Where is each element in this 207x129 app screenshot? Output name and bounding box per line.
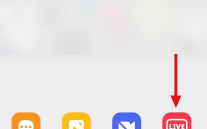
button[interactable]: Photos	[62, 112, 91, 129]
button[interactable]: Video	[112, 112, 141, 129]
button[interactable]: Messages	[11, 112, 40, 129]
button[interactable]: Go Live	[162, 112, 191, 129]
staticText: LIVE	[169, 122, 185, 129]
